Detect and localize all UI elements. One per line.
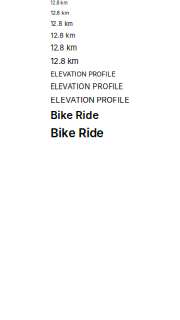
staticText: ELEVATION PROFILE	[50, 70, 115, 78]
staticText: Bike Ride	[50, 109, 98, 121]
staticText: 12.8 km	[50, 0, 67, 6]
staticText: 12.8 km	[50, 10, 69, 16]
staticText: Bike Ride	[50, 125, 103, 140]
staticText: 12.8 km	[50, 56, 78, 66]
staticText: ELEVATION PROFILE	[50, 82, 122, 91]
staticText: 12.8 km	[50, 31, 75, 39]
staticText: 12.8 km	[50, 43, 76, 52]
staticText: 12.8 km	[50, 20, 72, 27]
staticText: ELEVATION PROFILE	[50, 95, 129, 105]
